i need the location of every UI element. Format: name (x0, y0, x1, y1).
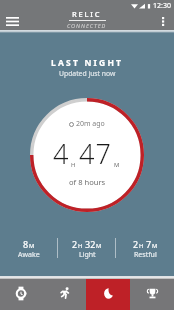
staticText: 2 (72, 238, 78, 250)
staticText: M (29, 242, 35, 250)
staticText: H (78, 242, 83, 250)
staticText: Restful (134, 250, 157, 260)
staticText: M (114, 161, 120, 169)
button[interactable]: Awards (130, 279, 174, 310)
button[interactable]: 8 (0, 238, 58, 260)
staticText: Light (79, 250, 96, 260)
staticText: Updated just now (59, 69, 116, 78)
staticText: LAST NIGHT (51, 57, 124, 69)
staticText: 4 (53, 135, 70, 172)
staticText: 8 (23, 238, 29, 250)
staticText: M (152, 242, 158, 250)
staticText: RELIC (72, 9, 102, 19)
button[interactable]: Navigation menu (0, 12, 25, 30)
staticText: 12:30 (153, 1, 171, 11)
staticText: 32 (85, 238, 96, 250)
staticText: Awake (18, 250, 40, 260)
staticText: CONNECTED (67, 22, 107, 30)
button[interactable]: Sleep (86, 279, 130, 310)
staticText: H (71, 161, 76, 169)
button[interactable]: 2 (116, 238, 174, 260)
staticText: H (139, 242, 144, 250)
staticText: M (96, 242, 102, 250)
staticText: 47 (79, 135, 113, 172)
staticText: 2 (133, 238, 139, 250)
staticText: of 8 hours (69, 177, 106, 187)
staticText: 7 (146, 238, 152, 250)
staticText: 20m ago (76, 119, 105, 129)
button[interactable]: 2 (58, 238, 116, 260)
button[interactable]: Activity (43, 279, 86, 310)
button[interactable]: Watch (0, 279, 43, 310)
button[interactable]: More options (152, 12, 174, 30)
